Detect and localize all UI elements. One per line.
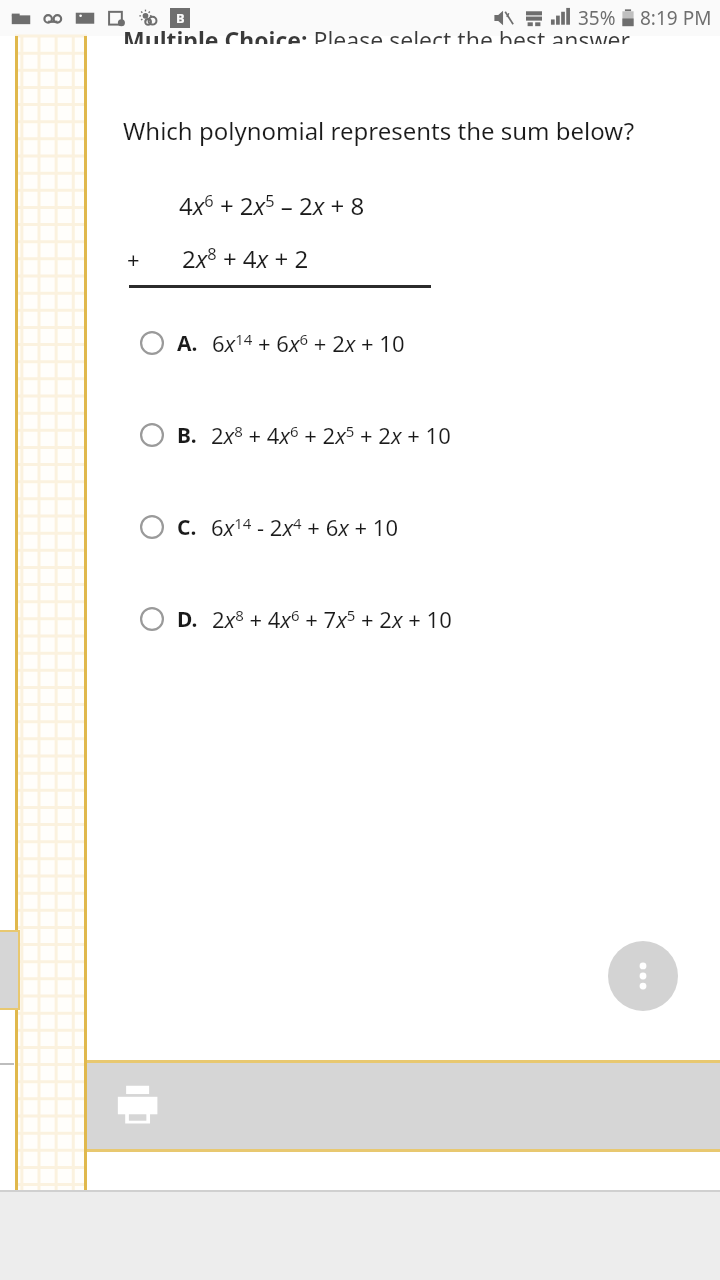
staticText: 2x8 + 4x6 + 7x5 + 2x + 10 [212, 604, 452, 634]
staticText: 2x8 + 4x6 + 2x5 + 2x + 10 [211, 420, 451, 450]
button[interactable]: Print [111, 1078, 167, 1134]
staticText: 6x14 - 2x4 + 6x + 10 [211, 512, 399, 542]
staticText: D. [177, 605, 198, 634]
button[interactable]: B. [87, 420, 720, 450]
staticText: C. [177, 513, 197, 542]
button[interactable]: D. [87, 604, 720, 634]
staticText: A. [177, 329, 198, 358]
staticText: B [176, 9, 185, 27]
staticText: 8:19 PM [640, 5, 712, 31]
staticText: 35% [578, 5, 616, 31]
staticText: + [127, 244, 140, 274]
button[interactable]: More options [608, 941, 678, 1011]
button[interactable]: C. [87, 512, 720, 542]
button[interactable]: A. [87, 328, 720, 358]
staticText: 2x8 + 4x + 2 [182, 242, 309, 275]
staticText: Multiple Choice: Please select the best … [123, 24, 636, 44]
staticText: 4x6 + 2x5 – 2x + 8 [179, 189, 365, 222]
staticText: B. [177, 421, 197, 450]
staticText: Which polynomial represents the sum belo… [123, 114, 635, 147]
staticText: 6x14 + 6x6 + 2x + 10 [212, 328, 405, 358]
